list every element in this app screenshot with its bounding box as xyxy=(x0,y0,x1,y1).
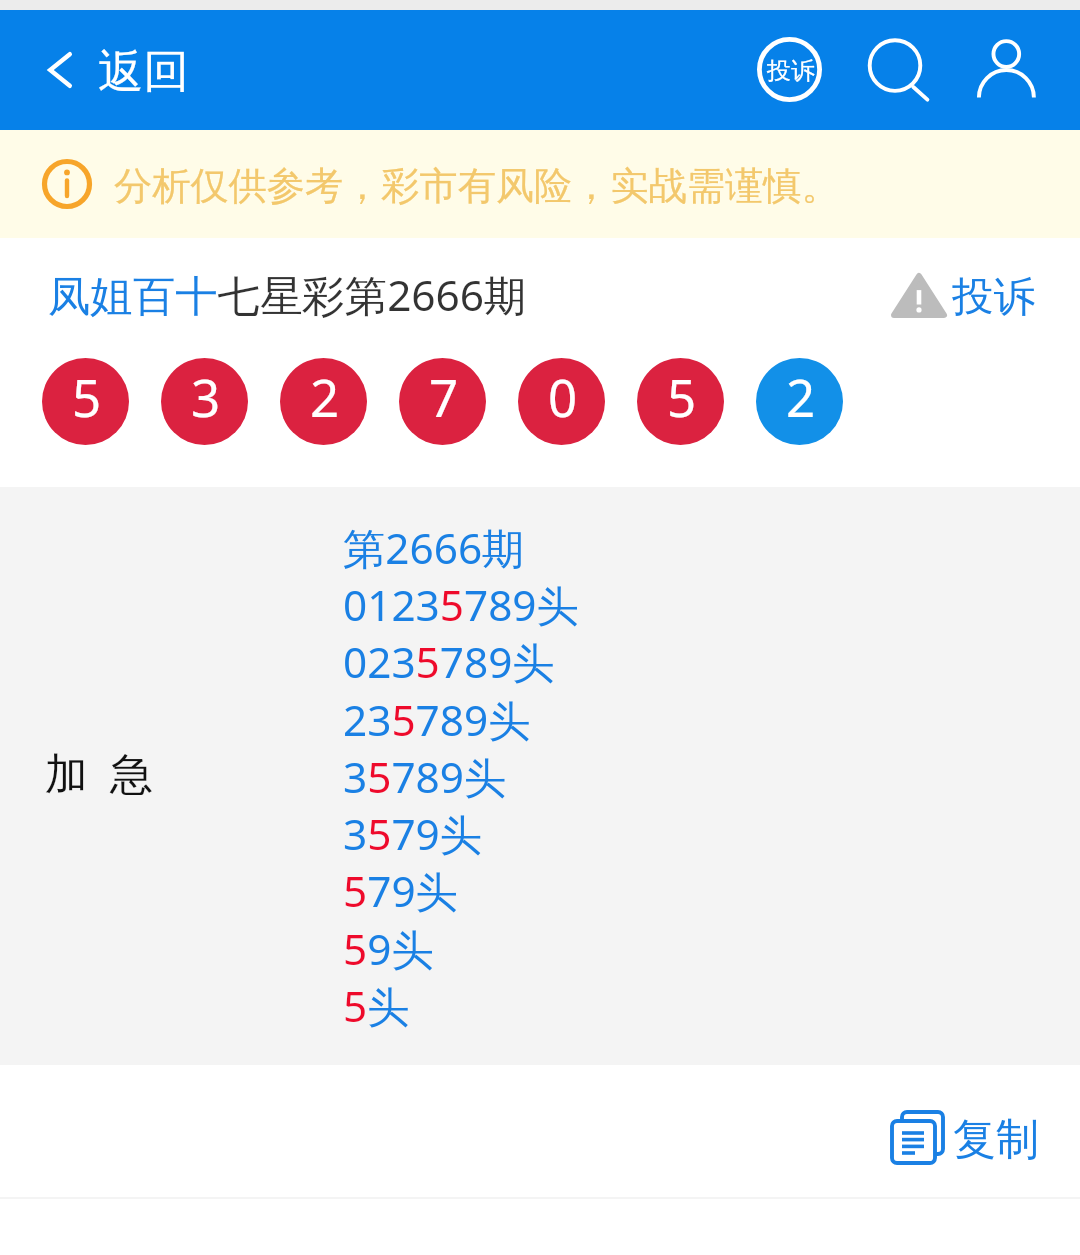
staticText: 59头 xyxy=(343,920,434,978)
staticText: 加 急 xyxy=(45,743,154,802)
button[interactable]: Search xyxy=(855,26,935,106)
button[interactable]: 投诉 xyxy=(745,26,833,114)
staticText: 5 xyxy=(667,362,697,431)
staticText: 第2666期 xyxy=(343,519,525,577)
staticText: 0 xyxy=(548,362,578,431)
staticText: 7 xyxy=(429,362,459,431)
button[interactable]: 投诉 xyxy=(888,258,1048,320)
button[interactable]: 0 xyxy=(518,358,605,445)
staticText: 0235789头 xyxy=(343,633,555,691)
button[interactable]: Profile xyxy=(966,26,1046,106)
staticText: 3579头 xyxy=(343,805,483,863)
button[interactable]: 2 xyxy=(756,358,843,445)
staticText: 凤姐百十七星彩第2666期 xyxy=(48,266,527,324)
button[interactable]: 2 xyxy=(280,358,367,445)
staticText: 2 xyxy=(786,362,816,431)
staticText: 分析仅供参考，彩市有风险，实战需谨慎。 xyxy=(114,162,840,210)
button[interactable]: 5 xyxy=(637,358,724,445)
button[interactable]: 7 xyxy=(399,358,486,445)
staticText: 2 xyxy=(310,362,340,431)
staticText: 35789头 xyxy=(343,748,507,806)
button[interactable]: 3 xyxy=(161,358,248,445)
staticText: 5 xyxy=(72,362,102,431)
staticText: 投诉 xyxy=(952,271,1035,323)
staticText: 5头 xyxy=(343,977,410,1035)
staticText: 01235789头 xyxy=(343,576,579,634)
staticText: 3 xyxy=(191,362,221,431)
staticText: 复制 xyxy=(953,1113,1039,1167)
staticText: 235789头 xyxy=(343,691,531,749)
button[interactable]: 返回 xyxy=(30,28,202,112)
staticText: 投诉 xyxy=(767,56,815,86)
button[interactable]: 5 xyxy=(42,358,129,445)
button[interactable]: 复制 xyxy=(870,1090,1050,1176)
staticText: 返回 xyxy=(98,43,189,100)
staticText: 579头 xyxy=(343,862,458,920)
